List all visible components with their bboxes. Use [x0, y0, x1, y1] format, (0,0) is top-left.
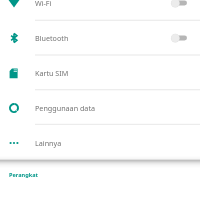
- button[interactable]: Wi-Fi: [0, 0, 200, 20]
- staticText: Wi-Fi: [35, 0, 52, 8]
- button[interactable]: Toggle Bluetooth: [168, 30, 188, 46]
- button[interactable]: Bluetooth: [0, 20, 200, 55]
- staticText: Bluetooth: [35, 33, 69, 43]
- staticText: Kartu SIM: [35, 68, 69, 78]
- button[interactable]: Penggunaan data: [0, 90, 200, 125]
- button[interactable]: Kartu SIM: [0, 55, 200, 90]
- staticText: Perangkat: [9, 171, 38, 179]
- button[interactable]: Lainnya: [0, 125, 200, 160]
- staticText: Lainnya: [35, 138, 62, 148]
- staticText: Penggunaan data: [35, 103, 96, 113]
- button[interactable]: Toggle Wi-Fi: [168, 0, 188, 11]
